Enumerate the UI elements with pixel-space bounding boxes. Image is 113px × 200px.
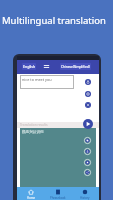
button[interactable]: Favorite	[84, 159, 91, 166]
button[interactable]: nice to meet you	[20, 75, 74, 89]
button[interactable]: Copy	[84, 137, 91, 144]
button[interactable]: Camera	[85, 91, 91, 97]
button[interactable]: Share	[84, 169, 91, 176]
staticText: nice to meet you	[22, 77, 52, 82]
staticText: Chinese(Simplified)	[61, 65, 90, 69]
staticText: History	[80, 196, 90, 200]
staticText: English	[23, 64, 36, 69]
button[interactable]: Clear	[85, 102, 91, 108]
button[interactable]: English	[22, 63, 36, 70]
staticText: 很高兴认识你	[22, 130, 44, 135]
staticText: Phrasebook	[50, 196, 66, 200]
button[interactable]: Home	[17, 187, 44, 200]
button[interactable]: Chinese(Simplified)	[60, 63, 91, 70]
button[interactable]: Swap languages	[43, 63, 50, 70]
staticText: Translation results	[20, 123, 48, 127]
staticText: Multilingual translation	[2, 14, 112, 27]
button[interactable]: Microphone	[85, 79, 91, 85]
button[interactable]: Speak	[84, 148, 91, 155]
button[interactable]: History	[71, 187, 98, 200]
button[interactable]: Phrasebook	[44, 187, 71, 200]
button[interactable]: Play	[83, 119, 93, 129]
staticText: Home	[27, 196, 35, 200]
